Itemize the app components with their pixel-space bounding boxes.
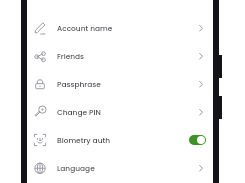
button[interactable]: Passphrase (27, 70, 213, 98)
button[interactable]: Biometry auth (27, 126, 213, 154)
button[interactable]: Language (27, 154, 213, 182)
button[interactable]: Account name (27, 14, 213, 42)
staticText: Biometry auth (57, 135, 111, 145)
staticText: Account name (57, 23, 113, 33)
staticText: Language (57, 163, 95, 173)
other: Open Language (197, 164, 205, 172)
other: Open Passphrase (197, 80, 205, 88)
button[interactable]: Biometry auth toggle (189, 135, 206, 145)
staticText: Change PIN (57, 107, 101, 117)
staticText: Friends (57, 51, 85, 61)
button[interactable]: Friends (27, 42, 213, 70)
other: Open Account name (197, 24, 205, 32)
other: Open Friends (197, 52, 205, 60)
staticText: Passphrase (57, 79, 101, 89)
other: Open Change PIN (197, 108, 205, 116)
button[interactable]: Change PIN (27, 98, 213, 126)
